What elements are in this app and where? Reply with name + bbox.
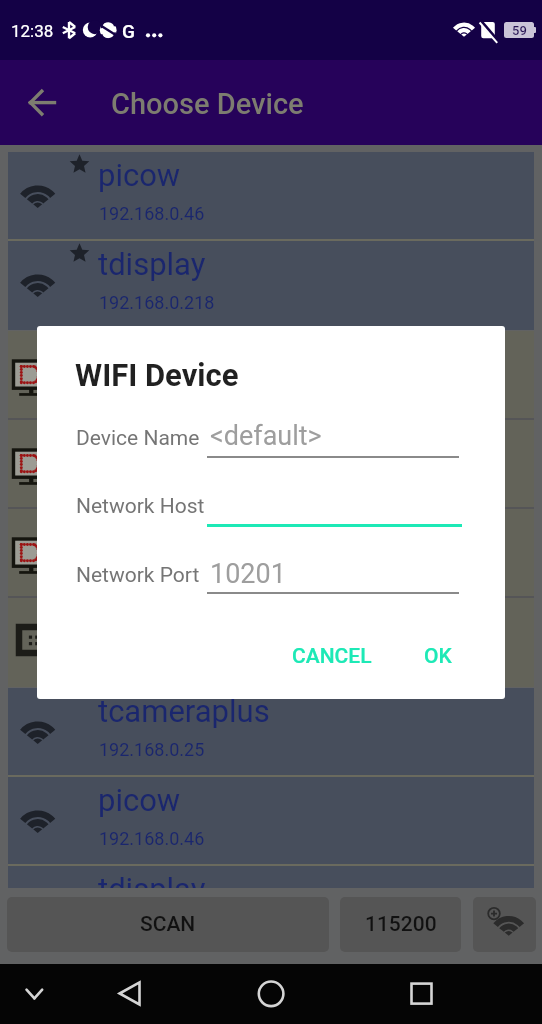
button[interactable]: tdisplay: [8, 866, 534, 888]
button[interactable]: Recent apps: [391, 964, 451, 1024]
button[interactable]: Home: [241, 964, 301, 1024]
staticText: 12:38: [11, 21, 54, 41]
button[interactable]: Back: [100, 964, 160, 1024]
staticText: CANCEL: [292, 644, 372, 669]
staticText: WIFI Device: [75, 357, 239, 393]
staticText: picow: [98, 782, 181, 818]
button[interactable]: Back: [14, 74, 70, 130]
staticText: Network Host: [76, 494, 205, 519]
staticText: 192.168.0.25: [99, 739, 205, 760]
staticText: tcameraplus: [98, 693, 270, 729]
button[interactable]: [8, 331, 534, 420]
staticText: 192.168.0.46: [99, 203, 205, 224]
staticText: 10201: [210, 558, 286, 590]
button[interactable]: tcameraplus: [8, 688, 534, 777]
staticText: picow: [98, 157, 181, 193]
staticText: 192.168.0.46: [99, 828, 205, 849]
staticText: Device Name: [76, 426, 200, 451]
staticText: 59: [512, 23, 527, 38]
button[interactable]: Add WiFi device: [473, 897, 536, 952]
staticText: Network Port: [76, 563, 200, 588]
button[interactable]: SCAN: [7, 897, 329, 952]
button[interactable]: tdisplay: [8, 241, 534, 330]
staticText: OK: [424, 644, 452, 669]
staticText: Choose Device: [111, 87, 304, 121]
staticText: tdisplay: [98, 246, 206, 282]
button[interactable]: Hide keyboard: [5, 964, 69, 1024]
staticText: <default>: [210, 420, 322, 452]
button[interactable]: OK: [411, 633, 465, 680]
button[interactable]: 115200: [340, 897, 461, 952]
staticText: SCAN: [140, 912, 196, 937]
staticText: 115200: [365, 912, 437, 937]
button[interactable]: [8, 598, 534, 687]
staticText: 192.168.0.218: [99, 292, 215, 313]
button[interactable]: picow: [8, 152, 534, 241]
button[interactable]: [8, 509, 534, 598]
button[interactable]: CANCEL: [279, 633, 385, 680]
staticText: tdisplay: [98, 871, 206, 888]
staticText: G: [122, 20, 135, 42]
button[interactable]: picow: [8, 777, 534, 866]
button[interactable]: [8, 420, 534, 509]
